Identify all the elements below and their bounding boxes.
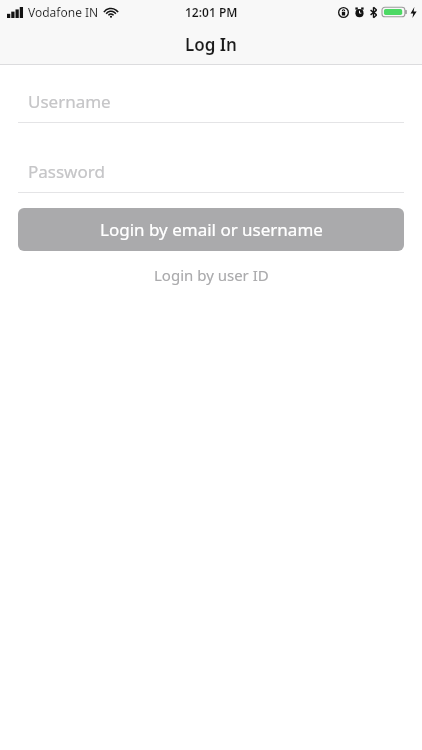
- staticText: 12:01 PM: [185, 4, 238, 20]
- staticText: Vodafone IN: [28, 4, 99, 20]
- staticText: Log In: [185, 33, 237, 56]
- staticText: Username: [28, 90, 111, 113]
- button[interactable]: Login by user ID: [0, 265, 422, 285]
- staticText: Password: [28, 160, 105, 183]
- staticText: Login by user ID: [154, 265, 269, 285]
- staticText: Login by email or username: [100, 218, 323, 241]
- button[interactable]: Password: [18, 156, 404, 193]
- button[interactable]: Login by email or username: [18, 208, 404, 251]
- button[interactable]: Username: [18, 86, 404, 123]
